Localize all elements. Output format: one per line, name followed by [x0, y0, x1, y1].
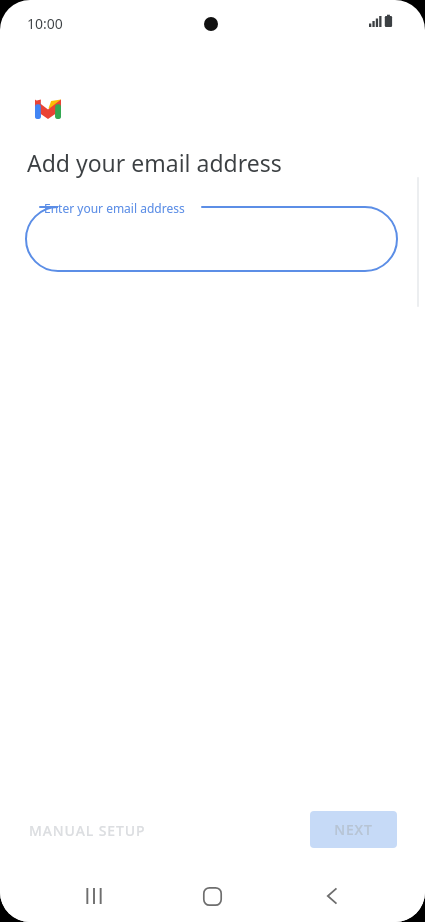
staticText: 10:00 — [27, 14, 63, 33]
staticText: Enter your email address — [44, 200, 185, 216]
button[interactable]: Recent apps — [70, 872, 118, 920]
button[interactable]: NEXT — [310, 811, 397, 848]
button[interactable]: Home — [188, 872, 236, 920]
button[interactable]: Enter your email address — [26, 199, 397, 271]
button[interactable]: Back — [308, 872, 356, 920]
button[interactable]: MANUAL SETUP — [20, 813, 155, 847]
staticText: MANUAL SETUP — [29, 821, 146, 840]
staticText: Add your email address — [27, 147, 282, 178]
staticText: NEXT — [334, 820, 373, 839]
